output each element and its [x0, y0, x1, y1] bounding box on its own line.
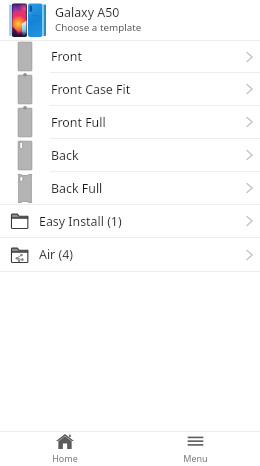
- button[interactable]: Home: [0, 432, 130, 465]
- staticText: Front Full: [51, 114, 106, 131]
- staticText: Front: [51, 48, 82, 65]
- button[interactable]: Back Full: [0, 172, 260, 204]
- staticText: Choose a template: [55, 21, 142, 34]
- staticText: Easy Install (1): [39, 213, 122, 230]
- button[interactable]: Front Full: [0, 106, 260, 138]
- staticText: Air (4): [39, 246, 73, 263]
- button[interactable]: Front Case Fit: [0, 73, 260, 105]
- button[interactable]: Menu: [130, 432, 260, 465]
- button[interactable]: Front: [0, 41, 260, 72]
- staticText: Menu: [183, 452, 208, 464]
- staticText: Back Full: [51, 180, 103, 197]
- button[interactable]: Easy Install (1): [0, 205, 260, 237]
- staticText: Front Case Fit: [51, 81, 131, 98]
- staticText: Galaxy A50: [55, 4, 120, 21]
- staticText: Back: [51, 147, 79, 164]
- staticText: Home: [52, 452, 78, 464]
- button[interactable]: Air (4): [0, 238, 260, 271]
- button[interactable]: Back: [0, 139, 260, 171]
